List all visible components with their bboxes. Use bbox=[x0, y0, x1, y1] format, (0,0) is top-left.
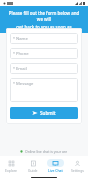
staticText: Submit bbox=[40, 110, 56, 116]
staticText: Explore bbox=[5, 168, 17, 173]
staticText: Online live chat is your are bbox=[25, 149, 68, 154]
button[interactable]: Guide bbox=[22, 156, 44, 175]
staticText: * bbox=[13, 36, 15, 41]
button[interactable]: * bbox=[10, 33, 78, 44]
staticText: get back to you as soon as possible. bbox=[7, 24, 81, 29]
staticText: * bbox=[13, 66, 15, 71]
staticText: Guide bbox=[28, 168, 38, 173]
staticText: Message bbox=[16, 81, 34, 87]
staticText: Settings bbox=[71, 168, 84, 173]
button[interactable]: * bbox=[10, 63, 78, 74]
button[interactable]: Settings bbox=[66, 156, 88, 175]
button[interactable]: * bbox=[10, 48, 78, 59]
staticText: Please fill out the form below and we wi… bbox=[7, 10, 81, 22]
staticText: * bbox=[13, 51, 15, 56]
button[interactable]: Explore bbox=[0, 156, 22, 175]
staticText: * bbox=[13, 81, 15, 86]
staticText: Phone bbox=[16, 51, 29, 56]
staticText: Live Chat bbox=[48, 168, 63, 173]
button[interactable]: Submit bbox=[10, 107, 78, 119]
staticText: Name bbox=[16, 36, 28, 41]
button[interactable]: * bbox=[10, 78, 78, 102]
button[interactable]: Live Chat bbox=[44, 156, 66, 175]
staticText: Email bbox=[16, 66, 27, 71]
